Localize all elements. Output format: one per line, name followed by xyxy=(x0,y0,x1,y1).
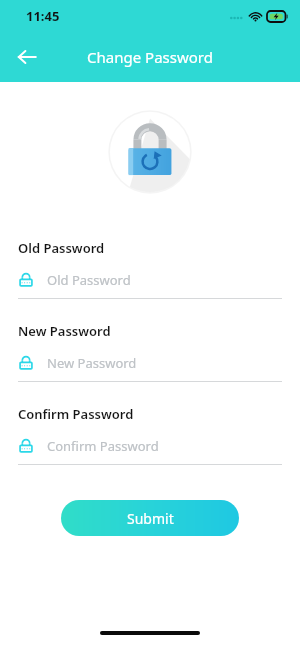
staticText: Change Password xyxy=(87,47,213,67)
button[interactable]: Confirm Password xyxy=(18,435,282,457)
staticText: 11:45 xyxy=(26,7,60,25)
button[interactable]: New Password xyxy=(18,352,282,374)
staticText: Old Password xyxy=(47,271,131,289)
staticText: New Password xyxy=(47,354,137,372)
staticText: New Password xyxy=(18,322,111,340)
button[interactable]: Back xyxy=(8,38,46,76)
staticText: Confirm Password xyxy=(47,437,159,455)
staticText: Old Password xyxy=(18,239,105,257)
staticText: Submit xyxy=(127,509,174,528)
button[interactable]: Old Password xyxy=(18,269,282,291)
staticText: Confirm Password xyxy=(18,405,134,423)
button[interactable]: Submit xyxy=(61,500,239,536)
